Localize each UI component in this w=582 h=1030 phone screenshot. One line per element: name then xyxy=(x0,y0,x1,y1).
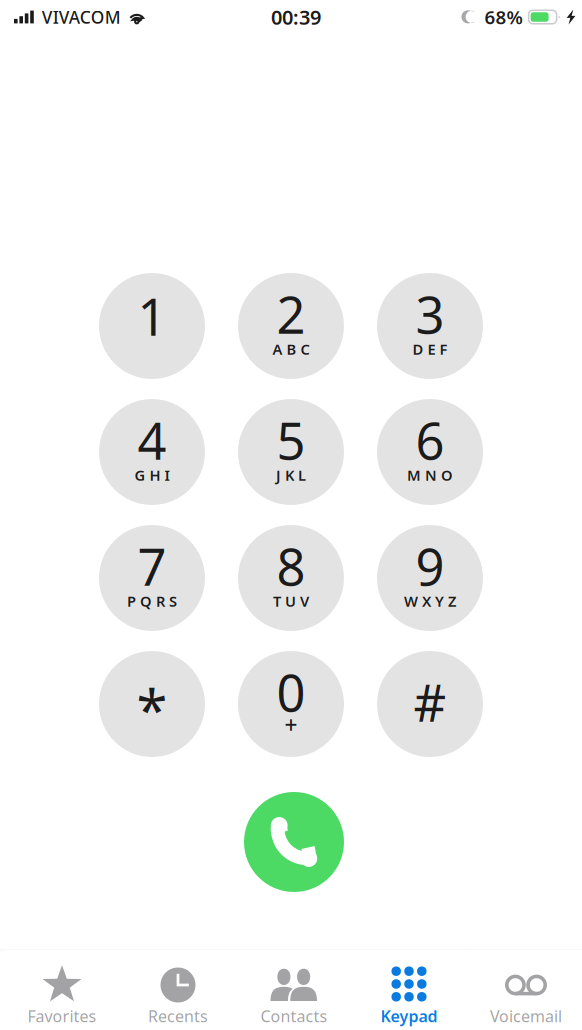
staticText: 8 xyxy=(276,532,305,600)
staticText: 9 xyxy=(415,532,444,600)
button[interactable]: Contacts xyxy=(236,950,352,1030)
button[interactable]: Keypad xyxy=(351,950,467,1030)
button[interactable]: 7 xyxy=(99,525,205,631)
button[interactable]: 0 xyxy=(238,651,344,757)
button[interactable]: 2 xyxy=(238,273,344,379)
button[interactable]: 5 xyxy=(238,399,344,505)
staticText: A B C xyxy=(272,339,309,359)
button[interactable]: 1 xyxy=(99,273,205,379)
staticText: D E F xyxy=(412,339,447,359)
staticText: M N O xyxy=(407,465,453,485)
button[interactable]: Call xyxy=(244,792,344,892)
staticText: + xyxy=(284,710,297,740)
button[interactable]: 9 xyxy=(377,525,483,631)
staticText: Keypad xyxy=(380,1005,437,1027)
staticText: 7 xyxy=(137,532,166,600)
staticText: G H I xyxy=(134,465,169,485)
button[interactable]: 4 xyxy=(99,399,205,505)
staticText: * xyxy=(136,672,167,746)
staticText: J K L xyxy=(276,465,306,485)
staticText: W X Y Z xyxy=(404,591,456,611)
staticText: T U V xyxy=(273,591,309,611)
staticText: 00:39 xyxy=(271,4,321,30)
button[interactable]: * xyxy=(99,651,205,757)
button[interactable]: Favorites xyxy=(4,950,120,1030)
staticText: 2 xyxy=(276,280,305,348)
button[interactable]: Voicemail xyxy=(468,950,582,1030)
staticText: Contacts xyxy=(260,1005,327,1027)
staticText: P Q R S xyxy=(127,591,177,611)
button[interactable]: 6 xyxy=(377,399,483,505)
staticText: Recents xyxy=(148,1005,208,1027)
staticText: 0 xyxy=(276,658,305,726)
staticText: 3 xyxy=(415,280,444,348)
button[interactable]: # xyxy=(377,651,483,757)
staticText: 6 xyxy=(415,406,444,474)
staticText: 1 xyxy=(137,282,166,350)
button[interactable]: 3 xyxy=(377,273,483,379)
staticText: 4 xyxy=(137,406,166,474)
button[interactable]: Recents xyxy=(120,950,236,1030)
staticText: Favorites xyxy=(27,1005,96,1027)
button[interactable]: 8 xyxy=(238,525,344,631)
staticText: 68% xyxy=(485,5,523,29)
staticText: 5 xyxy=(276,406,305,474)
staticText: VIVACOM xyxy=(42,5,121,28)
staticText: # xyxy=(413,668,446,736)
staticText: Voicemail xyxy=(490,1005,562,1027)
